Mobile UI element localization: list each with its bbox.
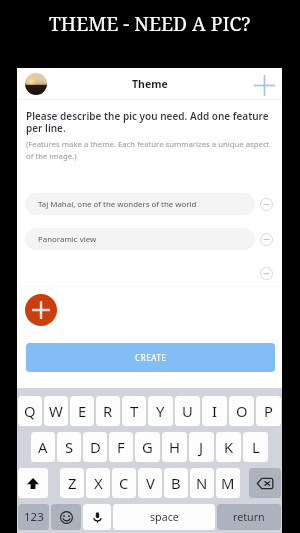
button[interactable]: X	[86, 468, 110, 498]
staticText: D	[90, 437, 101, 457]
staticText: Panoramic view	[38, 234, 97, 245]
staticText: CREATE	[135, 352, 167, 363]
staticText: Theme	[132, 77, 168, 91]
staticText: L	[252, 437, 260, 457]
staticText: S	[65, 437, 74, 457]
button[interactable]: B	[164, 468, 188, 498]
button[interactable]: E	[70, 396, 94, 426]
staticText: A	[38, 437, 48, 457]
button[interactable]: Q	[18, 396, 42, 426]
other: Backspace	[257, 478, 273, 489]
staticText: G	[142, 437, 153, 457]
button[interactable]: D	[83, 432, 107, 462]
staticText: (Features make a theme. Each feature sum…	[26, 139, 284, 161]
button[interactable]: Z	[60, 468, 84, 498]
button[interactable]: F	[109, 432, 133, 462]
button[interactable]: S	[57, 432, 81, 462]
button[interactable]: Remove	[257, 230, 275, 248]
staticText: J	[199, 437, 204, 457]
button[interactable]: CREATE	[26, 343, 275, 372]
button[interactable]: Shift	[18, 468, 48, 498]
button[interactable]: M	[216, 468, 240, 498]
button[interactable]: Microphone	[83, 504, 111, 530]
button[interactable]: Backspace	[249, 468, 281, 498]
staticText: Y	[156, 401, 165, 421]
button[interactable]: Remove	[257, 195, 275, 213]
staticText: Q	[24, 401, 36, 421]
other: Microphone	[91, 511, 104, 524]
button[interactable]: N	[190, 468, 214, 498]
button[interactable]: A	[31, 432, 55, 462]
button[interactable]: W	[44, 396, 68, 426]
button[interactable]: P	[256, 396, 281, 426]
staticText: K	[224, 437, 234, 457]
staticText: Taj Mahal, one of the wonders of the wor…	[38, 199, 197, 210]
button[interactable]: Profile	[25, 73, 47, 95]
staticText: P	[264, 401, 273, 421]
staticText: O	[236, 401, 248, 421]
button[interactable]: L	[243, 432, 268, 462]
staticText: N	[196, 473, 208, 493]
button[interactable]: H	[162, 432, 187, 462]
other: Shift	[27, 478, 39, 489]
staticText: B	[171, 473, 181, 493]
button[interactable]: R	[96, 396, 120, 426]
button[interactable]: V	[138, 468, 162, 498]
staticText: THEME - NEED A PIC?	[49, 10, 251, 36]
button[interactable]: Emoji	[51, 504, 81, 530]
button[interactable]: K	[216, 432, 241, 462]
staticText: V	[146, 473, 155, 493]
button[interactable]: O	[229, 396, 254, 426]
other: Emoji	[60, 511, 73, 524]
staticText: E	[78, 401, 87, 421]
staticText: H	[169, 437, 180, 457]
staticText: R	[103, 401, 113, 421]
staticText: space	[150, 510, 179, 525]
staticText: I	[212, 401, 218, 421]
button[interactable]: T	[122, 396, 146, 426]
button[interactable]: U	[175, 396, 200, 426]
staticText: M	[221, 473, 235, 493]
staticText: W	[49, 401, 63, 421]
staticText: T	[130, 401, 139, 421]
staticText: F	[117, 437, 125, 457]
button[interactable]: space	[113, 504, 215, 530]
staticText: U	[182, 401, 193, 421]
button[interactable]: 123	[18, 504, 49, 530]
button[interactable]: I	[202, 396, 227, 426]
button[interactable]: return	[217, 504, 281, 530]
button[interactable]: Add feature	[25, 294, 57, 326]
staticText: C	[119, 473, 129, 493]
staticText: X	[94, 473, 103, 493]
button[interactable]: Add	[253, 74, 276, 97]
button[interactable]: Panoramic view	[25, 228, 255, 250]
staticText: Please describe the pic you need. Add on…	[26, 109, 278, 135]
button[interactable]: G	[135, 432, 160, 462]
button[interactable]: J	[189, 432, 214, 462]
staticText: 123	[24, 509, 44, 525]
staticText: return	[233, 510, 265, 525]
staticText: Z	[68, 473, 77, 493]
button[interactable]: Taj Mahal, one of the wonders of the wor…	[25, 193, 255, 215]
button[interactable]: Remove	[257, 264, 275, 282]
button[interactable]: C	[112, 468, 136, 498]
button[interactable]: Y	[148, 396, 173, 426]
